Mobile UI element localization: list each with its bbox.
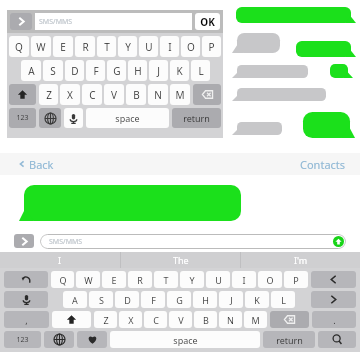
- button[interactable]: L: [191, 60, 210, 81]
- button[interactable]: [19, 185, 241, 221]
- button[interactable]: [232, 65, 308, 78]
- button[interactable]: space: [110, 331, 260, 348]
- button[interactable]: X: [119, 311, 142, 328]
- button[interactable]: Search: [318, 331, 356, 348]
- button[interactable]: K: [170, 60, 189, 81]
- button[interactable]: I'm: [241, 252, 360, 268]
- button[interactable]: M: [244, 311, 267, 328]
- button[interactable]: W: [76, 271, 100, 288]
- button[interactable]: G: [167, 291, 191, 308]
- button[interactable]: A: [63, 291, 87, 308]
- button[interactable]: return: [263, 331, 315, 348]
- button[interactable]: I: [0, 252, 120, 268]
- button[interactable]: I: [232, 271, 256, 288]
- button[interactable]: Send options: [10, 13, 32, 30]
- button[interactable]: W: [31, 36, 51, 57]
- button[interactable]: T: [154, 271, 178, 288]
- button[interactable]: Dictate: [4, 291, 48, 308]
- button[interactable]: J: [219, 291, 243, 308]
- button[interactable]: OK: [195, 13, 220, 30]
- button[interactable]: D: [115, 291, 139, 308]
- button[interactable]: X: [60, 84, 80, 105]
- button[interactable]: S: [89, 291, 113, 308]
- button[interactable]: Q: [51, 271, 74, 288]
- button[interactable]: N: [219, 311, 242, 328]
- button[interactable]: Backspace: [270, 311, 309, 328]
- button[interactable]: U: [139, 36, 158, 57]
- button[interactable]: Language: [39, 108, 61, 128]
- button[interactable]: [296, 41, 356, 57]
- button[interactable]: [232, 88, 326, 101]
- button[interactable]: Emoji: [77, 331, 107, 348]
- button[interactable]: return: [172, 108, 221, 128]
- button[interactable]: Next: [311, 291, 356, 308]
- button[interactable]: [303, 112, 355, 138]
- button[interactable]: E: [53, 36, 73, 57]
- staticText: J: [157, 64, 160, 78]
- button[interactable]: [232, 122, 282, 135]
- button[interactable]: B: [194, 311, 217, 328]
- staticText: L: [198, 64, 204, 78]
- button[interactable]: J: [149, 60, 168, 81]
- button[interactable]: S: [43, 60, 63, 81]
- button[interactable]: H: [128, 60, 147, 81]
- button[interactable]: L: [271, 291, 295, 308]
- button[interactable]: [330, 64, 353, 78]
- button[interactable]: E: [102, 271, 126, 288]
- button[interactable]: SMS/MMS: [39, 13, 192, 30]
- staticText: The: [173, 254, 189, 266]
- button[interactable]: H: [193, 291, 217, 308]
- staticText: OK: [200, 15, 215, 29]
- button[interactable]: M: [170, 84, 190, 105]
- button[interactable]: Y: [180, 271, 204, 288]
- button[interactable]: Send: [333, 236, 344, 247]
- button[interactable]: V: [104, 84, 124, 105]
- button[interactable]: Q: [9, 36, 29, 57]
- button[interactable]: Previous: [311, 271, 356, 288]
- button[interactable]: I: [160, 36, 179, 57]
- staticText: C: [89, 88, 96, 102]
- button[interactable]: D: [65, 60, 84, 81]
- button[interactable]: U: [206, 271, 230, 288]
- button[interactable]: Backspace: [193, 84, 221, 105]
- button[interactable]: Undo: [4, 271, 48, 288]
- button[interactable]: A: [21, 60, 41, 81]
- staticText: U: [145, 40, 153, 54]
- button[interactable]: K: [245, 291, 269, 308]
- button[interactable]: Send options: [14, 234, 34, 248]
- button[interactable]: space: [86, 108, 169, 128]
- button[interactable]: V: [169, 311, 192, 328]
- button[interactable]: Z: [39, 84, 58, 105]
- button[interactable]: ,: [4, 311, 49, 328]
- button[interactable]: Shift: [52, 311, 91, 328]
- button[interactable]: .: [312, 311, 356, 328]
- button[interactable]: Shift: [9, 84, 36, 105]
- button[interactable]: [236, 7, 356, 23]
- button[interactable]: SMS/MMS: [40, 234, 346, 249]
- button[interactable]: P: [284, 271, 308, 288]
- button[interactable]: R: [128, 271, 152, 288]
- button[interactable]: O: [181, 36, 200, 57]
- button[interactable]: Z: [94, 311, 117, 328]
- button[interactable]: Dictate: [64, 108, 83, 128]
- button[interactable]: T: [97, 36, 116, 57]
- button[interactable]: [232, 33, 280, 53]
- button[interactable]: Back: [18, 153, 54, 175]
- staticText: Contacts: [300, 157, 346, 172]
- button[interactable]: 123: [9, 108, 36, 128]
- button[interactable]: F: [141, 291, 165, 308]
- button[interactable]: C: [82, 84, 102, 105]
- button[interactable]: Language: [44, 331, 74, 348]
- button[interactable]: N: [148, 84, 168, 105]
- button[interactable]: O: [258, 271, 282, 288]
- button[interactable]: F: [86, 60, 105, 81]
- button[interactable]: 123: [4, 331, 41, 348]
- button[interactable]: Y: [118, 36, 137, 57]
- button[interactable]: Contacts: [300, 157, 346, 172]
- button[interactable]: G: [107, 60, 126, 81]
- button[interactable]: B: [126, 84, 146, 105]
- button[interactable]: R: [75, 36, 95, 57]
- button[interactable]: The: [121, 252, 240, 268]
- button[interactable]: C: [144, 311, 167, 328]
- button[interactable]: P: [202, 36, 221, 57]
